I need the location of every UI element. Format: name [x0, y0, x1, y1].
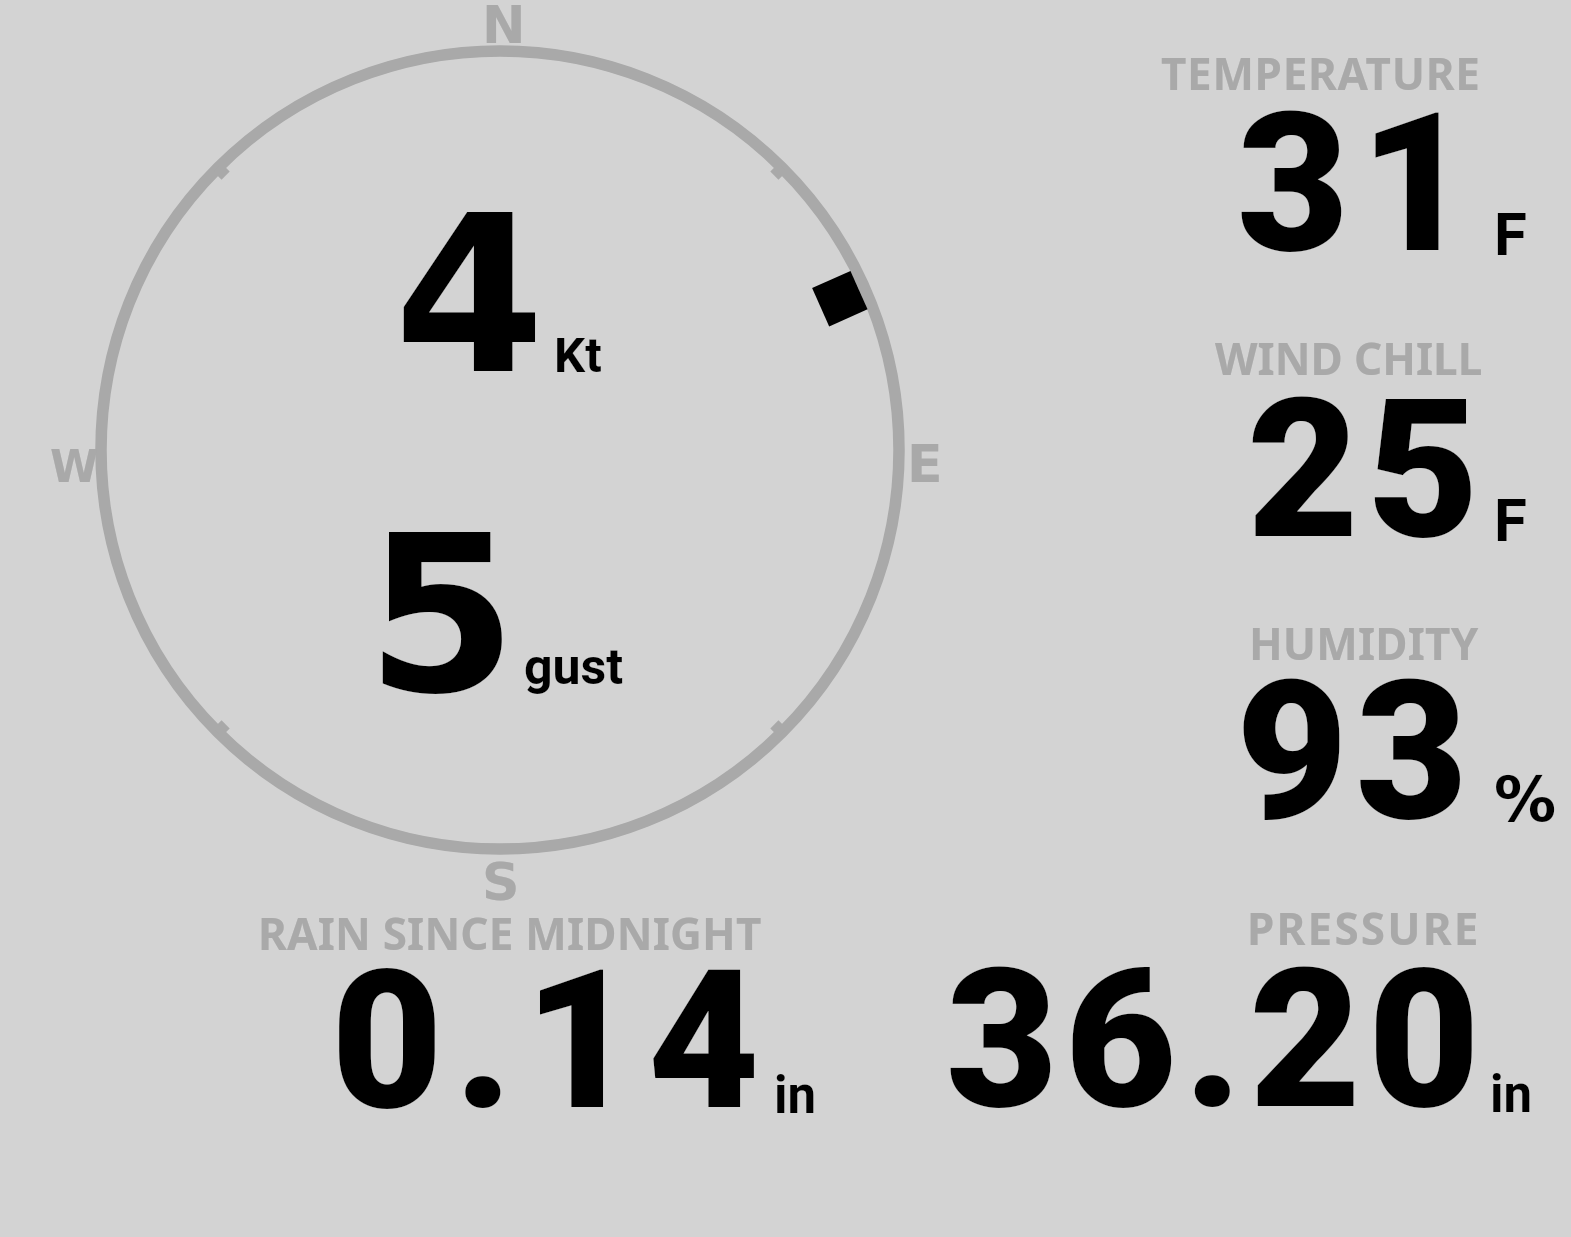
staticText: 31: [1237, 71, 1483, 297]
staticText: N: [482, 0, 526, 56]
staticText: 36.20: [946, 927, 1487, 1153]
staticText: RAIN SINCE MIDNIGHT: [258, 903, 762, 963]
staticText: PRESSURE: [1247, 898, 1481, 958]
button[interactable]: Rain since midnight 0.14 in: [210, 895, 850, 1125]
staticText: 4: [394, 170, 545, 423]
staticText: 93: [1236, 639, 1476, 865]
button[interactable]: Humidity 93 %: [1130, 607, 1571, 857]
staticText: E: [907, 434, 943, 495]
staticText: 0.14: [331, 928, 772, 1154]
staticText: in: [774, 1066, 817, 1126]
staticText: F: [1494, 485, 1527, 555]
staticText: %: [1494, 763, 1557, 835]
staticText: 5: [366, 490, 517, 743]
staticText: S: [482, 852, 520, 913]
button[interactable]: Pressure 36.20 in: [900, 895, 1550, 1125]
staticText: Kt: [554, 327, 602, 384]
staticText: W: [50, 441, 99, 492]
button[interactable]: Wind chill 25 F: [1130, 325, 1571, 575]
staticText: TEMPERATURE: [1161, 43, 1481, 103]
staticText: HUMIDITY: [1249, 613, 1479, 673]
staticText: F: [1494, 199, 1527, 269]
button[interactable]: Wind 4 knots, gusting 5, from east north…: [96, 46, 904, 854]
staticText: gust: [524, 638, 624, 697]
staticText: WIND CHILL: [1215, 328, 1483, 388]
staticText: 25: [1247, 357, 1488, 583]
staticText: in: [1490, 1065, 1533, 1125]
button[interactable]: Temperature 31 F: [1130, 40, 1571, 290]
